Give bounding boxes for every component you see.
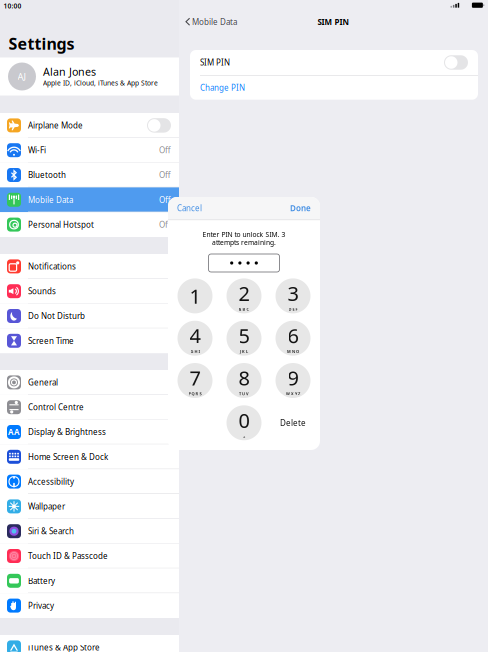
- staticText: Mobile Data: [192, 17, 237, 27]
- staticText: M N O: [287, 349, 299, 354]
- staticText: Personal Hotspot: [28, 219, 94, 230]
- staticText: SIM PIN: [317, 17, 349, 27]
- button[interactable]: Mobile Data: [0, 187, 179, 212]
- staticText: Accessibility: [28, 476, 74, 487]
- button[interactable]: Delete: [275, 405, 310, 440]
- button[interactable]: Siri & Search: [0, 519, 179, 544]
- staticText: A B C: [238, 306, 249, 312]
- button[interactable]: 7: [177, 363, 212, 398]
- button[interactable]: General: [0, 370, 179, 395]
- button[interactable]: Sounds: [0, 279, 179, 304]
- staticText: Settings: [9, 33, 75, 54]
- staticText: Siri & Search: [28, 526, 74, 536]
- staticText: W X Y Z: [286, 391, 300, 396]
- button[interactable]: Accessibility: [0, 469, 179, 494]
- staticText: 5: [238, 322, 249, 349]
- staticText: AA: [8, 427, 20, 437]
- button[interactable]: Wallpaper: [0, 494, 179, 519]
- staticText: Touch ID & Passcode: [28, 551, 108, 561]
- button[interactable]: Personal Hotspot: [0, 212, 179, 237]
- button[interactable]: Battery: [0, 568, 179, 593]
- staticText: P Q R S: [188, 391, 201, 396]
- staticText: T U V: [239, 391, 249, 396]
- staticText: 2: [238, 280, 249, 307]
- button[interactable]: 2: [226, 278, 261, 313]
- staticText: Off: [159, 145, 171, 155]
- staticText: J K L: [240, 349, 248, 354]
- staticText: Cancel: [177, 203, 202, 213]
- staticText: Airplane Mode: [28, 120, 83, 131]
- staticText: AJ: [17, 70, 26, 83]
- staticText: Bluetooth: [28, 170, 66, 180]
- staticText: 10:00: [3, 1, 21, 10]
- staticText: Done: [290, 203, 311, 213]
- button[interactable]: Do Not Disturb: [0, 304, 179, 328]
- button[interactable]: Privacy: [0, 593, 179, 618]
- button[interactable]: Mobile Data: [179, 17, 237, 27]
- staticText: 3: [287, 280, 298, 307]
- button[interactable]: Wi-Fi: [0, 138, 179, 163]
- button[interactable]: Screen Time: [0, 328, 179, 353]
- button[interactable]: 6: [275, 321, 310, 356]
- staticText: Display & Brightness: [28, 427, 106, 437]
- staticText: 1: [189, 283, 200, 309]
- staticText: Off: [159, 219, 171, 230]
- button[interactable]: Touch ID & Passcode: [0, 544, 179, 568]
- staticText: 7: [189, 365, 200, 391]
- staticText: G H I: [190, 349, 199, 354]
- staticText: Privacy: [28, 600, 54, 611]
- button[interactable]: Bluetooth: [0, 163, 179, 187]
- button[interactable]: Cancel: [168, 203, 202, 213]
- staticText: Enter PIN to unlock SIM. 3: [202, 230, 285, 239]
- staticText: Wallpaper: [28, 501, 65, 512]
- button[interactable]: 1: [177, 278, 212, 313]
- staticText: Mobile Data: [28, 194, 73, 205]
- staticText: Off: [159, 170, 171, 180]
- staticText: Screen Time: [28, 335, 74, 346]
- staticText: 6: [287, 322, 298, 349]
- button[interactable]: Airplane Mode: [0, 113, 179, 138]
- staticText: 9: [287, 365, 298, 391]
- button[interactable]: Done: [290, 203, 320, 213]
- button[interactable]: iTunes & App Store: [0, 635, 179, 652]
- staticText: 0: [238, 407, 249, 433]
- staticText: attempts remaining.: [212, 238, 276, 247]
- staticText: Notifications: [28, 261, 76, 272]
- staticText: Off: [159, 194, 171, 205]
- staticText: Change PIN: [200, 82, 245, 93]
- staticText: Battery: [28, 575, 55, 586]
- button[interactable]: 3: [275, 278, 310, 313]
- staticText: SIM PIN: [200, 57, 230, 68]
- staticText: Apple ID, iCloud, iTunes & App Store: [43, 78, 158, 87]
- staticText: 4: [189, 322, 200, 349]
- staticText: Home Screen & Dock: [28, 451, 108, 462]
- staticText: 8: [238, 365, 249, 391]
- staticText: D E F: [288, 306, 297, 312]
- staticText: iTunes & App Store: [28, 642, 100, 652]
- button[interactable]: 0: [226, 405, 261, 440]
- staticText: General: [28, 377, 58, 388]
- button[interactable]: 4: [177, 321, 212, 356]
- staticText: Delete: [280, 417, 306, 428]
- button[interactable]: 5: [226, 321, 261, 356]
- staticText: Alan Jones: [43, 64, 96, 79]
- staticText: +: [243, 433, 245, 439]
- button[interactable]: 8: [226, 363, 261, 398]
- button[interactable]: Change PIN: [190, 76, 478, 100]
- staticText: Do Not Disturb: [28, 311, 85, 321]
- button[interactable]: AJ: [0, 57, 179, 95]
- staticText: Control Centre: [28, 402, 84, 412]
- staticText: Sounds: [28, 286, 56, 296]
- button[interactable]: Control Centre: [0, 395, 179, 420]
- button[interactable]: AA: [0, 420, 179, 444]
- button[interactable]: Home Screen & Dock: [0, 444, 179, 469]
- staticText: Wi-Fi: [28, 145, 46, 155]
- button[interactable]: 9: [275, 363, 310, 398]
- button[interactable]: Notifications: [0, 254, 179, 279]
